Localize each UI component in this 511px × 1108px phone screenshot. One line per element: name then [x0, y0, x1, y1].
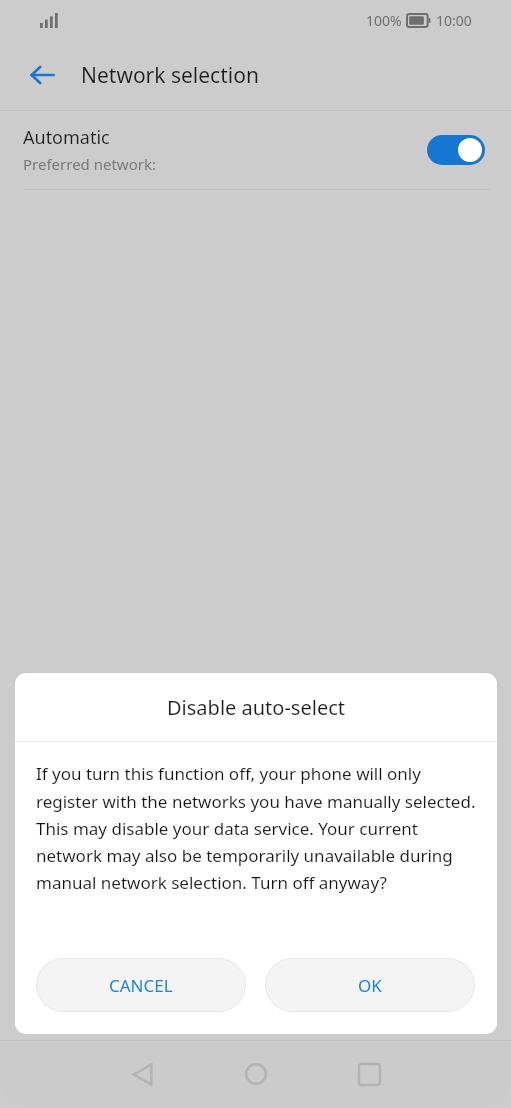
button[interactable]: OK [265, 958, 475, 1012]
staticText: If you turn this function off, your phon… [36, 762, 479, 894]
staticText: Automatic [23, 125, 110, 150]
button[interactable]: CANCEL [36, 958, 246, 1012]
button[interactable]: Home [226, 1044, 286, 1104]
staticText: Preferred network: [23, 154, 156, 174]
staticText: Network selection [81, 61, 259, 90]
staticText: CANCEL [109, 974, 173, 997]
button[interactable]: Back [16, 49, 68, 101]
staticText: 100% [366, 11, 402, 30]
button[interactable]: Back [112, 1044, 172, 1104]
button[interactable]: Automatic [0, 111, 511, 189]
button[interactable]: Recent apps [339, 1044, 399, 1104]
button[interactable]: Automatic network selection toggle [427, 135, 485, 165]
staticText: Disable auto-select [167, 694, 345, 721]
staticText: 10:00 [436, 11, 472, 30]
staticText: OK [358, 974, 382, 997]
